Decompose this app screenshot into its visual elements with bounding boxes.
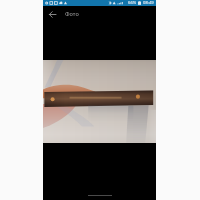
button[interactable]: Back (46, 8, 58, 20)
staticText: Фото (65, 10, 79, 18)
staticText: 08:49 (143, 0, 154, 6)
staticText: 66% (128, 0, 137, 6)
